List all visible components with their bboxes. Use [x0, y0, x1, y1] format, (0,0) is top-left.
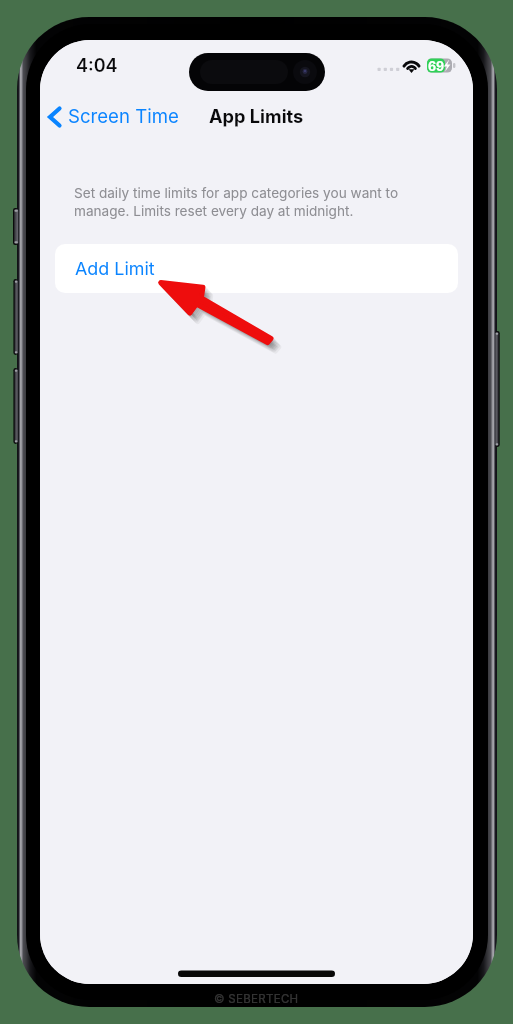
staticText: Set daily time limits for app categories…	[74, 185, 419, 219]
staticText: Screen Time	[68, 105, 179, 128]
staticText: Add Limit	[75, 258, 155, 280]
button[interactable]: Back to Screen Time	[44, 103, 182, 130]
staticText: 69	[428, 59, 445, 73]
staticText: 4:04	[76, 55, 118, 77]
staticText: App Limits	[209, 105, 304, 127]
staticText: © SEBERTECH	[214, 992, 299, 1006]
button[interactable]: Add Limit	[55, 244, 458, 293]
